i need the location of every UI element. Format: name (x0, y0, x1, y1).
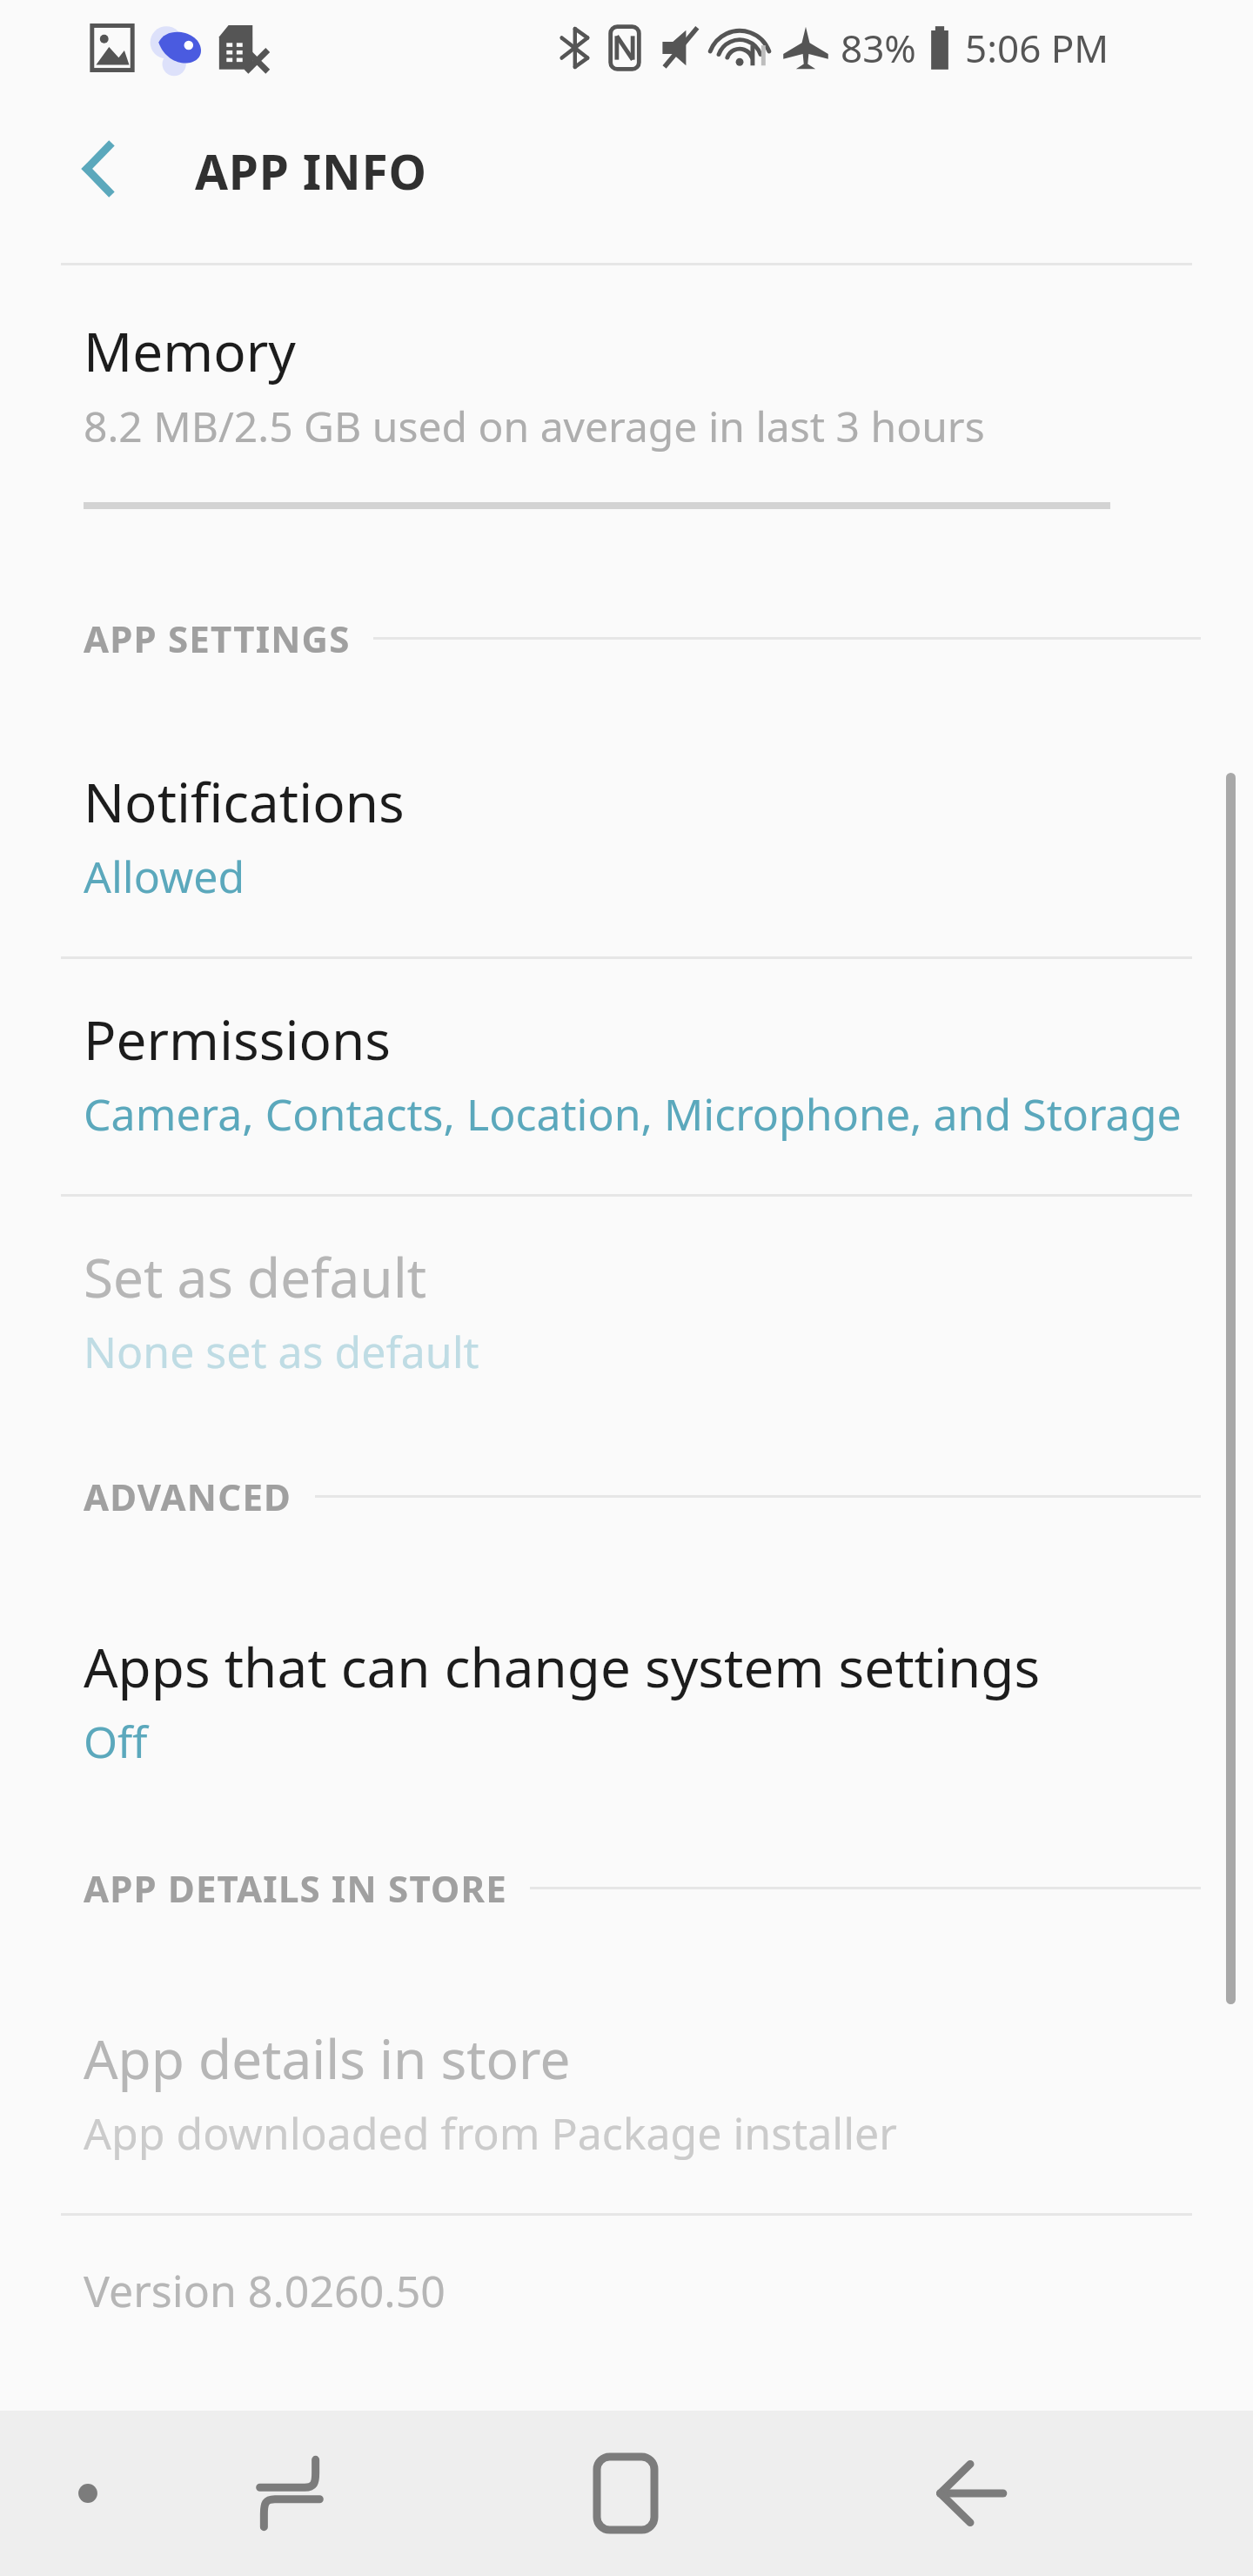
button[interactable]: Menu indicator (40, 2411, 136, 2576)
staticText: ADVANCED (84, 1472, 292, 1521)
staticText: App downloaded from Package installer (84, 2103, 897, 2163)
staticText: Camera, Contacts, Location, Microphone, … (84, 1084, 1182, 1144)
button[interactable]: Recent apps (224, 2411, 355, 2576)
button[interactable]: Memory (0, 265, 1253, 518)
staticText: Allowed (84, 847, 245, 906)
button[interactable]: Permissions (0, 959, 1253, 1194)
staticText: 83% (841, 22, 916, 74)
staticText: APP INFO (195, 138, 427, 204)
button[interactable]: Back (905, 2411, 1035, 2576)
staticText: None set as default (84, 1322, 479, 1381)
button[interactable]: Apps that can change system settings (0, 1587, 1253, 1821)
button[interactable]: App details in store (0, 1978, 1253, 2213)
staticText: APP SETTINGS (84, 614, 351, 663)
staticText: Notifications (84, 765, 405, 838)
staticText: App details in store (84, 2022, 571, 2095)
button[interactable]: Set as default (0, 1197, 1253, 1432)
button[interactable]: Back (50, 121, 146, 217)
staticText: Off (84, 1712, 148, 1771)
button[interactable]: Notifications (0, 721, 1253, 956)
staticText: Apps that can change system settings (84, 1630, 1041, 1703)
staticText: Version 8.0260.50 (84, 2261, 446, 2320)
staticText: Memory (84, 314, 296, 387)
staticText: APP DETAILS IN STORE (84, 1863, 507, 1913)
staticText: 8.2 MB/2.5 GB used on average in last 3 … (84, 398, 985, 454)
staticText: Set as default (84, 1240, 427, 1313)
staticText: Permissions (84, 1003, 391, 1076)
button[interactable]: Home (560, 2411, 691, 2576)
staticText: 5:06 PM (965, 22, 1109, 74)
